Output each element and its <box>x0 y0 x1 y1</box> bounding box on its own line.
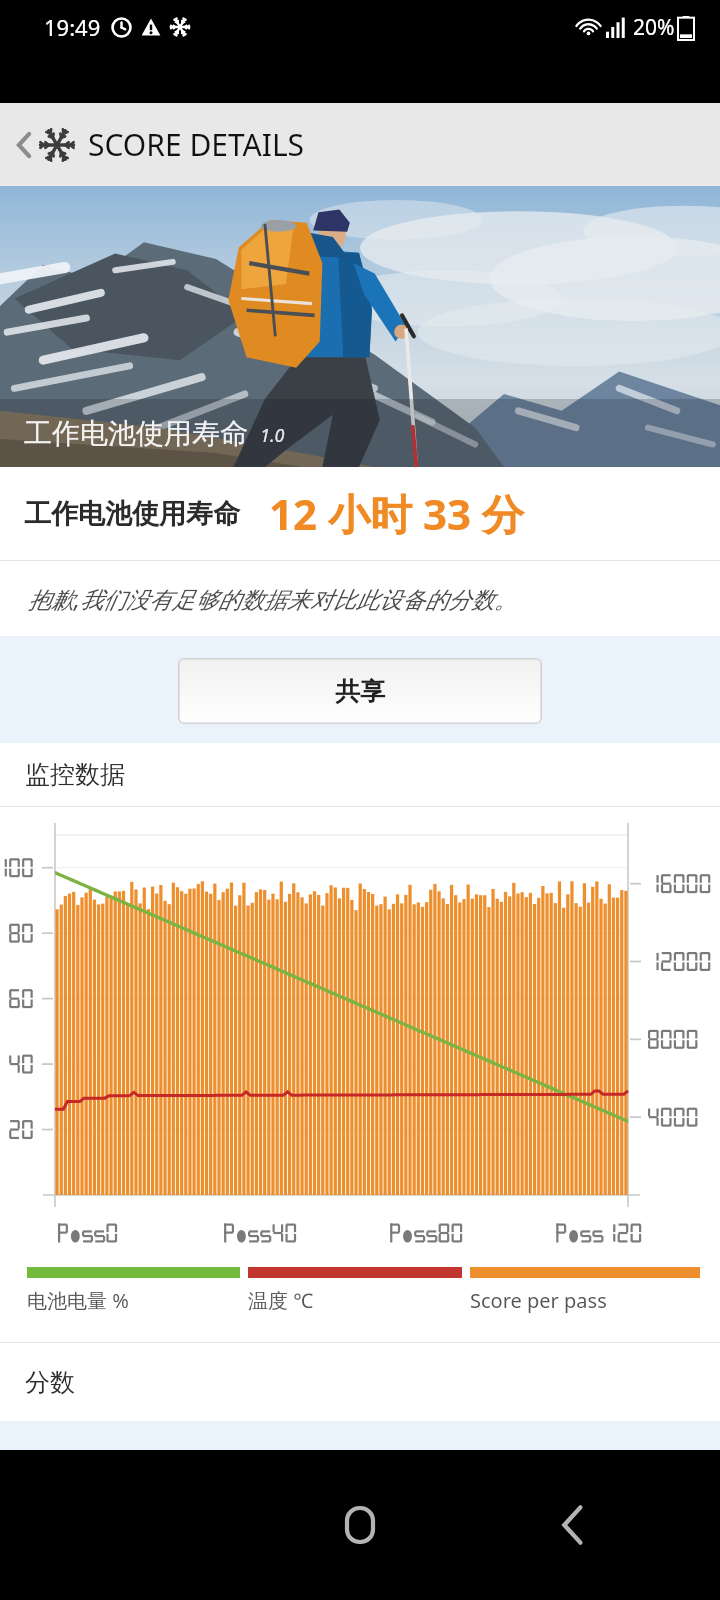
staticText: 工作电池使用寿命 <box>24 416 248 451</box>
button[interactable]: Home <box>322 1487 398 1563</box>
staticText: 电池电量 % <box>27 1287 129 1314</box>
button[interactable]: Back <box>534 1487 610 1563</box>
staticText: SCORE DETAILS <box>88 124 305 165</box>
button[interactable]: Back <box>8 118 313 171</box>
staticText: 抱歉,我们没有足够的数据来对比此设备的分数。 <box>28 583 517 614</box>
staticText: 温度 ℃ <box>248 1287 314 1314</box>
staticText: 监控数据 <box>25 759 125 790</box>
staticText: 20% <box>633 13 675 42</box>
staticText: 12 小时 33 分 <box>269 485 524 542</box>
staticText: 19:49 <box>44 12 101 42</box>
staticText: Score per pass <box>470 1287 607 1314</box>
staticText: 1.0 <box>260 423 285 448</box>
staticText: 共享 <box>335 676 385 707</box>
button[interactable]: 工作电池使用寿命 <box>0 467 720 560</box>
staticText: 分数 <box>25 1367 75 1398</box>
other: Back <box>16 130 32 160</box>
button[interactable]: 共享 <box>178 658 542 724</box>
button[interactable] <box>0 807 720 1265</box>
staticText: 工作电池使用寿命 <box>24 497 240 531</box>
button[interactable]: 工作电池使用寿命 <box>0 186 720 467</box>
